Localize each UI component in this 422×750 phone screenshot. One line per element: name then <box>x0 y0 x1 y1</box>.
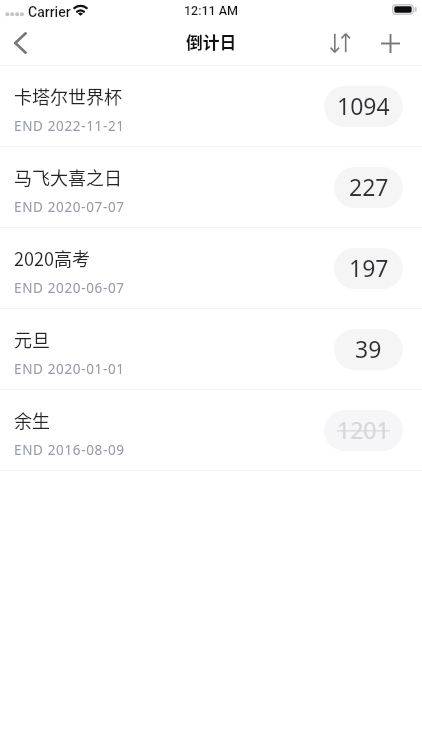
staticText: 39 <box>355 333 382 364</box>
button[interactable]: 马飞大喜之日 <box>0 147 422 228</box>
staticText: 余生 <box>14 407 50 433</box>
staticText: 倒计日 <box>186 30 237 54</box>
staticText: 227 <box>349 171 389 202</box>
staticText: 1201 <box>337 414 390 445</box>
button[interactable]: Back <box>0 26 40 60</box>
staticText: END 2020-06-07 <box>14 279 125 297</box>
button[interactable]: 卡塔尔世界杯 <box>0 66 422 147</box>
staticText: 元旦 <box>14 326 50 352</box>
staticText: END 2022-11-21 <box>14 117 125 135</box>
button[interactable]: 2020高考 <box>0 228 422 309</box>
staticText: 197 <box>349 252 389 283</box>
staticText: 12:11 AM <box>184 3 239 18</box>
button[interactable]: Add <box>371 26 409 60</box>
staticText: END 2020-07-07 <box>14 198 125 216</box>
button[interactable]: Sort <box>321 26 359 60</box>
button[interactable]: 余生 <box>0 390 422 471</box>
staticText: END 2020-01-01 <box>14 360 125 378</box>
staticText: 卡塔尔世界杯 <box>14 83 122 109</box>
button[interactable]: 元旦 <box>0 309 422 390</box>
staticText: 2020高考 <box>14 245 90 271</box>
staticText: Carrier <box>28 4 71 20</box>
staticText: 马飞大喜之日 <box>14 164 122 190</box>
staticText: 1094 <box>337 90 390 121</box>
staticText: END 2016-08-09 <box>14 441 125 459</box>
